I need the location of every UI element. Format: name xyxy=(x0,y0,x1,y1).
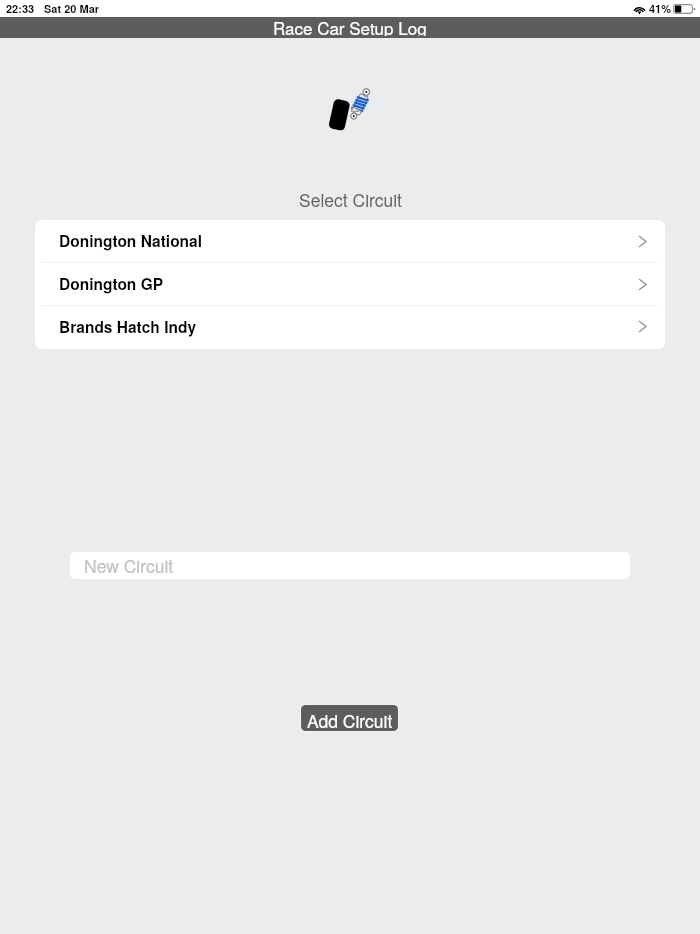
staticText: 22:33 xyxy=(6,1,35,17)
staticText: Select Circuit xyxy=(299,187,402,212)
staticText: Donington GP xyxy=(59,273,164,295)
staticText: Brands Hatch Indy xyxy=(59,316,197,338)
other: Open Donington National xyxy=(639,236,646,247)
other: Open Donington GP xyxy=(639,279,646,290)
button[interactable]: Add Circuit xyxy=(301,705,398,731)
staticText: Donington National xyxy=(59,230,203,252)
button[interactable]: Brands Hatch Indy xyxy=(35,306,665,349)
button[interactable]: Donington National xyxy=(35,220,665,263)
button[interactable]: New Circuit xyxy=(70,552,630,579)
staticText: 41% xyxy=(649,1,672,17)
staticText: Race Car Setup Log xyxy=(273,15,427,36)
other: Open Brands Hatch Indy xyxy=(639,321,646,332)
button[interactable]: Donington GP xyxy=(35,263,665,306)
staticText: Sat 20 Mar xyxy=(44,1,100,17)
staticText: New Circuit xyxy=(84,553,174,578)
staticText: Add Circuit xyxy=(307,708,393,731)
